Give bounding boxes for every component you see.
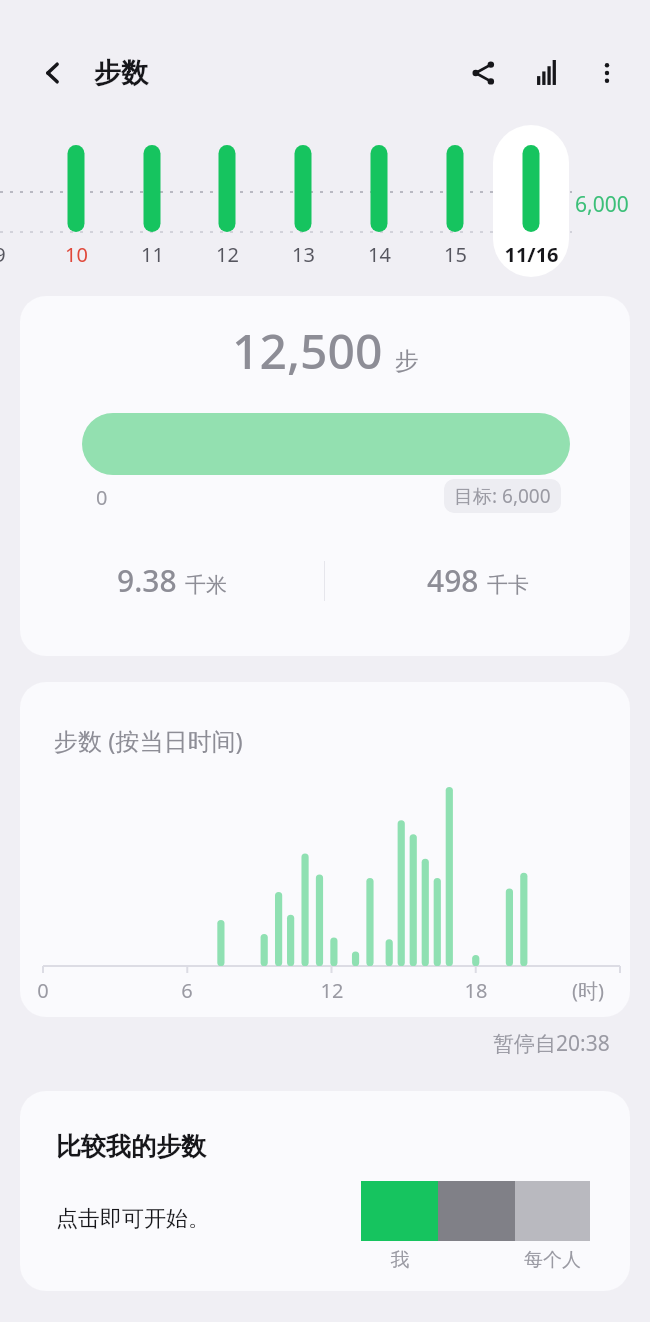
staticText: 12 [312,977,352,1004]
button[interactable]: More options [582,48,632,98]
staticText: 498 [427,560,479,601]
button[interactable]: 14 [339,238,419,270]
button[interactable]: Trends [522,48,572,98]
staticText: 10 [65,241,88,268]
staticText: 11/16 [504,241,559,268]
button[interactable]: 10 [36,238,116,270]
staticText: 13 [292,241,315,268]
staticText: 11 [141,241,164,268]
staticText: 14 [368,241,391,268]
staticText: 暂停自20:38 [493,1029,610,1058]
staticText: 点击即可开始。 [56,1205,210,1233]
button[interactable]: Share [458,48,508,98]
button[interactable]: Back [30,50,76,96]
staticText: 6 [167,977,207,1004]
staticText: 步数 [94,56,148,90]
button[interactable]: 步数 (按当日时间) [20,682,630,1017]
button[interactable]: 9 [0,238,40,270]
staticText: 18 [456,977,496,1004]
staticText: 9.38 [117,560,177,601]
staticText: 0 [96,484,108,511]
staticText: 目标: 6,000 [454,483,551,509]
staticText: 12 [216,241,239,268]
button[interactable]: 15 [415,238,495,270]
staticText: 千卡 [487,572,529,598]
staticText: 12,500 [232,318,383,383]
staticText: 步 [395,346,419,376]
staticText: 0 [23,977,63,1004]
staticText: 比较我的步数 [56,1131,206,1162]
staticText: 9 [0,241,6,268]
staticText: 我 [380,1248,420,1272]
button[interactable]: 11/16 [491,238,571,270]
staticText: (时) [572,977,604,1004]
staticText: 每个人 [515,1248,590,1272]
button[interactable]: 比较我的步数 [20,1091,630,1291]
button[interactable]: 11 [112,238,192,270]
staticText: 千米 [185,572,227,598]
button[interactable]: 12,500 [20,296,630,656]
button[interactable]: 13 [263,238,343,270]
staticText: 步数 (按当日时间) [54,724,243,757]
staticText: 6,000 [575,190,629,219]
staticText: 15 [444,241,467,268]
button[interactable]: 12 [187,238,267,270]
